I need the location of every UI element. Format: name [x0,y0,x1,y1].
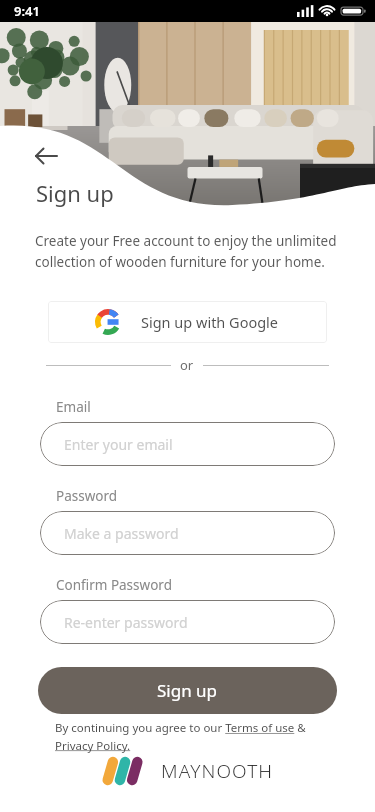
staticText: Sign up [36,178,114,208]
staticText: Make a password [64,524,179,543]
staticText: By continuing you agree to our Terms of … [55,720,306,753]
button[interactable]: By continuing you agree to our Terms of … [55,720,320,753]
staticText: Create your Free account to enjoy the un… [35,232,337,271]
staticText: Password [56,487,118,505]
staticText: Sign up [157,679,218,702]
staticText: Enter your email [64,435,173,454]
staticText: MAYNOOTH [161,758,274,784]
button[interactable]: Sign up [38,667,337,714]
staticText: Sign up with Google [141,312,279,332]
staticText: Email [56,398,91,416]
button[interactable]: Sign up with Google [48,301,327,343]
staticText: or [180,356,194,374]
staticText: Confirm Password [56,576,172,594]
button[interactable]: Back [28,138,64,174]
staticText: 9:41 [14,2,40,20]
button[interactable]: Re-enter password [40,600,335,644]
button[interactable]: Make a password [40,511,335,555]
button[interactable]: Enter your email [40,422,335,466]
staticText: Re-enter password [64,613,188,632]
